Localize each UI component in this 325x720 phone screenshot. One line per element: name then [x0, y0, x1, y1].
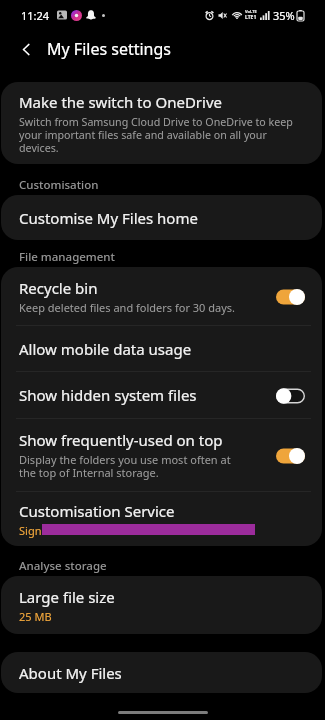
staticText: Large file size: [19, 587, 115, 607]
staticText: 35%: [273, 8, 295, 23]
staticText: Display the folders you use most often a…: [19, 452, 240, 480]
button[interactable]: Customise My Files home: [1, 195, 322, 240]
staticText: Switch from Samsung Cloud Drive to OneDr…: [19, 115, 302, 155]
staticText: About My Files: [19, 663, 122, 683]
button[interactable]: Navigate up: [12, 35, 40, 63]
staticText: Analyse storage: [19, 558, 107, 574]
staticText: Customisation: [19, 177, 99, 193]
staticText: Customisation Service: [19, 501, 175, 521]
staticText: 25 MB: [19, 609, 52, 624]
staticText: Keep deleted files and folders for 30 da…: [19, 300, 236, 315]
staticText: 11:24: [21, 8, 50, 23]
staticText: VoLTE: [245, 9, 257, 14]
staticText: Show hidden system files: [19, 385, 197, 405]
button[interactable]: Show hidden system files: [1, 372, 322, 419]
button[interactable]: Allow mobile data usage: [1, 326, 322, 372]
staticText: Sign in: [19, 523, 54, 538]
staticText: Recycle bin: [19, 278, 98, 298]
staticText: File management: [19, 249, 115, 265]
button[interactable]: Customisation Service: [1, 492, 322, 546]
staticText: My Files settings: [47, 38, 172, 60]
button[interactable]: About My Files: [1, 652, 322, 693]
staticText: Customise My Files home: [19, 208, 198, 228]
staticText: Make the switch to OneDrive: [19, 92, 222, 112]
button[interactable]: Make the switch to OneDrive: [1, 82, 322, 164]
button[interactable]: Large file size: [1, 576, 322, 634]
staticText: Show frequently-used on top: [19, 430, 223, 450]
staticText: Allow mobile data usage: [19, 339, 192, 359]
staticText: LTE1: [245, 14, 257, 21]
button[interactable]: Recycle bin: [1, 267, 322, 326]
button[interactable]: Show frequently-used on top: [1, 419, 322, 492]
